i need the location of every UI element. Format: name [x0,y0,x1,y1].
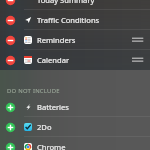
button[interactable]: Remove widget [0,10,150,30]
button[interactable]: Remove widget [5,0,16,6]
button[interactable]: Add widget [5,122,16,133]
staticText: 2Do [37,122,52,132]
staticText: Batteries [37,102,69,112]
staticText: Calendar [37,55,70,65]
button[interactable]: Remove widget [0,30,150,50]
button[interactable]: Remove widget [5,15,16,26]
staticText: Reminders [37,35,76,45]
button[interactable]: Reorder [130,34,145,46]
button[interactable]: Remove widget [0,50,150,70]
staticText: Traffic Conditions [37,15,100,25]
staticText: Chrome [37,142,66,150]
button[interactable]: Add widget [0,97,150,117]
button[interactable]: Remove widget [0,0,150,10]
button[interactable]: Add widget [0,117,150,137]
button[interactable]: Add widget [5,142,16,150]
button[interactable]: Add widget [5,102,16,113]
button[interactable]: Reorder [130,54,145,66]
staticText: DO NOT INCLUDE [7,87,60,95]
button[interactable]: Remove widget [5,55,16,66]
button[interactable]: Remove widget [5,35,16,46]
staticText: Today Summary [37,0,95,5]
button[interactable]: Add widget [0,137,150,150]
